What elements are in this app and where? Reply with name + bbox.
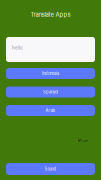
staticText: Indonesia — [42, 71, 59, 76]
staticText: Sound — [44, 166, 56, 171]
staticText: Spanyol — [43, 89, 58, 94]
staticText: hello — [12, 45, 23, 50]
staticText: Arab — [45, 108, 55, 113]
staticText: Translate Apps — [30, 11, 70, 18]
button[interactable]: Arab — [0, 105, 101, 116]
staticText: مرحبا — [77, 137, 88, 142]
button[interactable]: hello — [0, 37, 101, 62]
button[interactable]: Indonesia — [0, 68, 101, 79]
button[interactable]: Spanyol — [0, 86, 101, 97]
button[interactable]: Sound — [0, 163, 101, 175]
